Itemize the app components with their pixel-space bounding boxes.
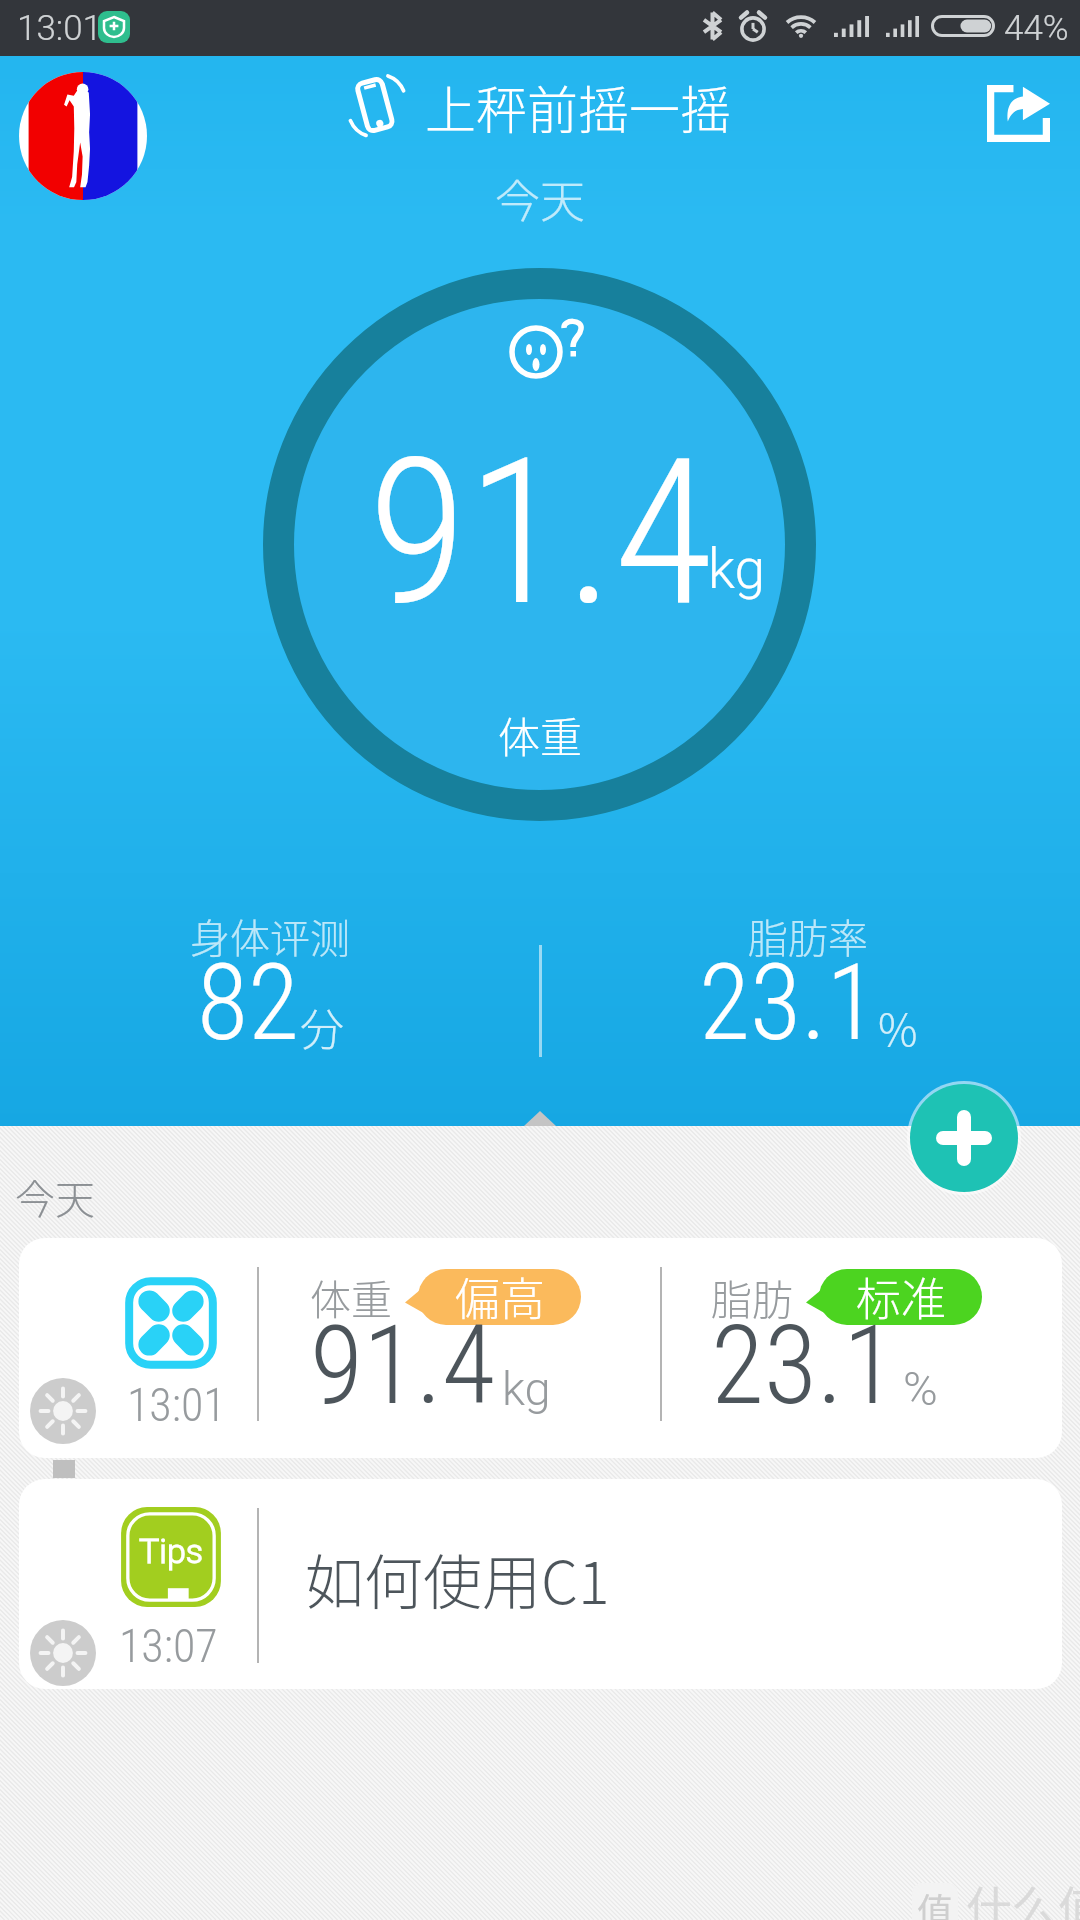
staticText: 91.4 xyxy=(310,1302,496,1430)
staticText: 身体评测 xyxy=(190,907,350,965)
button[interactable]: Add record xyxy=(910,1084,1018,1192)
staticText: 脂肪 xyxy=(711,1267,793,1326)
staticText: 44% xyxy=(1004,8,1069,49)
staticText: 13:07 xyxy=(119,1619,218,1673)
staticText: 脂肪率 xyxy=(748,907,868,965)
staticText: 91.4 xyxy=(368,414,713,652)
staticText: 今天 xyxy=(495,166,586,231)
button[interactable]: Profile xyxy=(19,72,147,200)
staticText: 13:01 xyxy=(17,8,103,49)
staticText: 今天 xyxy=(15,1168,95,1226)
staticText: 标准 xyxy=(856,1264,947,1329)
staticText: 偏高 xyxy=(455,1264,546,1329)
button[interactable]: Share xyxy=(975,70,1061,156)
staticText: kg xyxy=(502,1361,551,1416)
staticText: 什么值得买 xyxy=(966,1872,1080,1920)
staticText: 上秤前摇一摇 xyxy=(425,70,732,144)
staticText: 分 xyxy=(300,995,344,1059)
staticText: 如何使用C1 xyxy=(305,1536,610,1621)
staticText: % xyxy=(903,1361,938,1416)
staticText: Tips xyxy=(139,1531,204,1571)
button[interactable]: 13:01 xyxy=(19,1238,1062,1458)
staticText: 23.1 xyxy=(699,942,878,1065)
staticText: kg xyxy=(708,537,765,601)
staticText: 值 xyxy=(917,1883,954,1920)
button[interactable]: Tips xyxy=(19,1479,1062,1689)
staticText: 13:01 xyxy=(127,1378,226,1432)
staticText: 体重 xyxy=(310,1267,392,1326)
staticText: 23.1 xyxy=(711,1302,897,1430)
staticText: % xyxy=(878,995,918,1059)
staticText: 82 xyxy=(197,942,300,1065)
staticText: 体重 xyxy=(498,704,583,765)
